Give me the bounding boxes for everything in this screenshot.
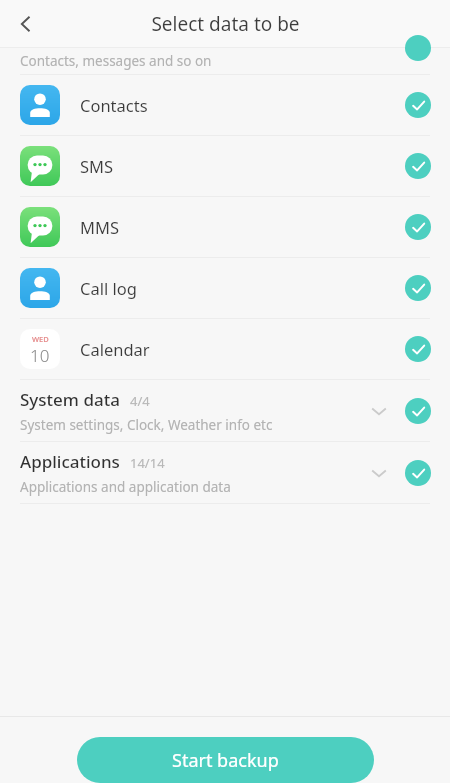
button[interactable]: Expand	[359, 391, 399, 431]
staticText: WED	[32, 334, 49, 344]
staticText: Contacts, messages and so on	[20, 52, 212, 70]
button[interactable]: SMS	[0, 136, 450, 196]
button[interactable]: Selected	[405, 153, 431, 179]
staticText: Calendar	[80, 338, 405, 360]
staticText: Call log	[80, 277, 405, 299]
button[interactable]: Call log	[0, 258, 450, 318]
staticText: 4/4	[130, 392, 150, 410]
button[interactable]: Selected	[405, 336, 431, 362]
staticText: Applications and application data	[20, 478, 231, 496]
button[interactable]: Expand	[359, 453, 399, 493]
button[interactable]: System data	[0, 380, 450, 441]
button[interactable]: MMS	[0, 197, 450, 257]
button[interactable]: Selected	[405, 460, 431, 486]
staticText: Select data to be	[151, 11, 300, 37]
button[interactable]: Selected	[405, 214, 431, 240]
staticText: MMS	[80, 216, 405, 238]
button[interactable]: WED	[0, 319, 450, 379]
staticText: Applications	[20, 450, 120, 473]
staticText: Start backup	[172, 748, 279, 773]
button[interactable]: Selected	[405, 398, 431, 424]
button[interactable]: Applications	[0, 442, 450, 503]
button[interactable]: Contacts	[0, 75, 450, 135]
staticText: System settings, Clock, Weather info etc	[20, 416, 273, 434]
button[interactable]: Selected	[405, 275, 431, 301]
button[interactable]: Selected	[405, 92, 431, 118]
staticText: 14/14	[130, 454, 165, 472]
button[interactable]: Back	[4, 2, 48, 46]
staticText: System data	[20, 388, 120, 411]
button[interactable]: Contacts, messages and so on	[0, 48, 450, 74]
staticText: SMS	[80, 155, 405, 177]
button[interactable]: Start backup	[77, 737, 374, 783]
staticText: Contacts	[80, 94, 405, 116]
staticText: 10	[30, 344, 50, 367]
